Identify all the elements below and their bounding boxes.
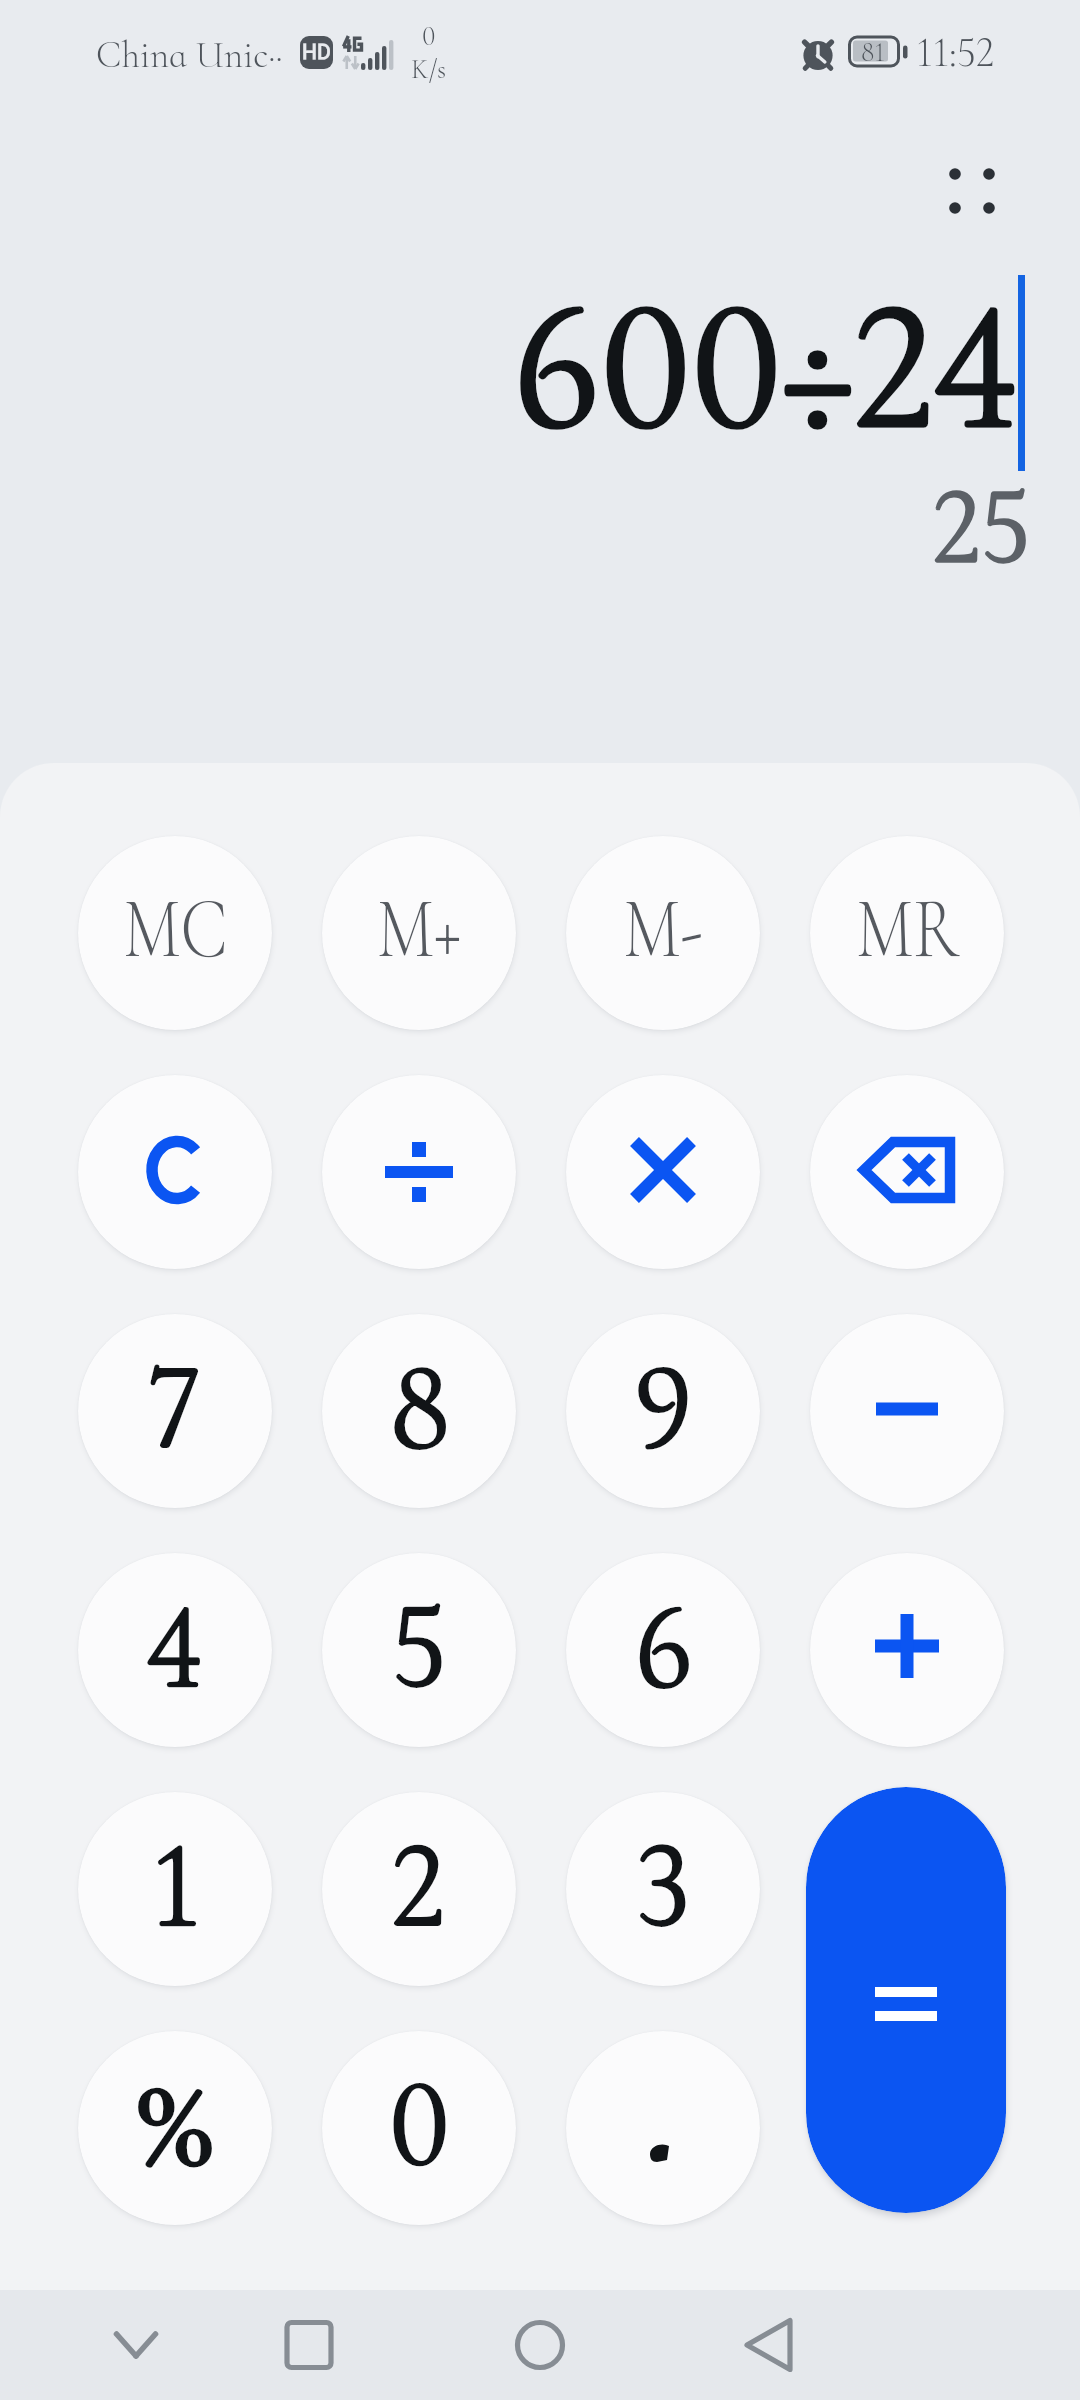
staticText: 0 xyxy=(389,2052,450,2197)
staticText: MC xyxy=(123,877,228,981)
button[interactable]: Show history xyxy=(930,149,1014,233)
button[interactable]: 3 xyxy=(566,1792,760,1986)
button[interactable]: Home xyxy=(485,2290,595,2400)
button[interactable]: 5 xyxy=(322,1553,516,1747)
button[interactable]: Recents xyxy=(254,2290,364,2400)
button[interactable]: M+ xyxy=(322,836,516,1030)
button[interactable]: Minus xyxy=(810,1314,1004,1508)
button[interactable]: Divide xyxy=(322,1075,516,1269)
staticText: 2 xyxy=(392,1813,446,1958)
staticText: M+ xyxy=(377,877,461,981)
button[interactable]: MC xyxy=(78,836,272,1030)
button[interactable]: 7 xyxy=(78,1314,272,1508)
staticText: HD xyxy=(302,40,331,65)
staticText: 1 xyxy=(152,1813,199,1958)
staticText: 5 xyxy=(392,1574,446,1719)
staticText: 11:52 xyxy=(916,27,995,78)
button[interactable]: MR xyxy=(810,836,1004,1030)
staticText: 6 xyxy=(634,1574,693,1719)
button[interactable]: Back xyxy=(713,2290,823,2400)
button[interactable]: Decimal separator xyxy=(566,2031,760,2225)
button[interactable]: Equals xyxy=(806,1787,1006,2213)
staticText: 3 xyxy=(637,1813,690,1958)
staticText: K/s xyxy=(411,53,447,86)
button[interactable]: 1 xyxy=(78,1792,272,1986)
staticText: MR xyxy=(856,877,959,981)
button[interactable]: Clear xyxy=(78,1075,272,1269)
staticText: 8 xyxy=(390,1335,449,1480)
button[interactable]: Hide keyboard xyxy=(81,2290,191,2400)
button[interactable]: Multiply xyxy=(566,1075,760,1269)
staticText: 600÷24 xyxy=(512,258,1020,477)
button[interactable]: M- xyxy=(566,836,760,1030)
button[interactable]: 9 xyxy=(566,1314,760,1508)
button[interactable]: 4 xyxy=(78,1553,272,1747)
button[interactable]: % xyxy=(78,2031,272,2225)
button[interactable]: 0 xyxy=(322,2031,516,2225)
staticText: M- xyxy=(623,877,703,981)
button[interactable]: 6 xyxy=(566,1553,760,1747)
staticText: 4 xyxy=(147,1574,204,1719)
staticText: 0 xyxy=(422,20,436,53)
button[interactable]: 2 xyxy=(322,1792,516,1986)
staticText: 81 xyxy=(861,36,885,69)
button[interactable]: 8 xyxy=(322,1314,516,1508)
staticText: 7 xyxy=(149,1335,201,1480)
button[interactable]: Plus xyxy=(810,1553,1004,1747)
staticText: China Unic·· xyxy=(96,33,283,78)
staticText: % xyxy=(136,2040,214,2203)
staticText: 9 xyxy=(634,1335,693,1480)
staticText: 25 xyxy=(933,461,1030,592)
button[interactable]: Backspace xyxy=(810,1075,1004,1269)
